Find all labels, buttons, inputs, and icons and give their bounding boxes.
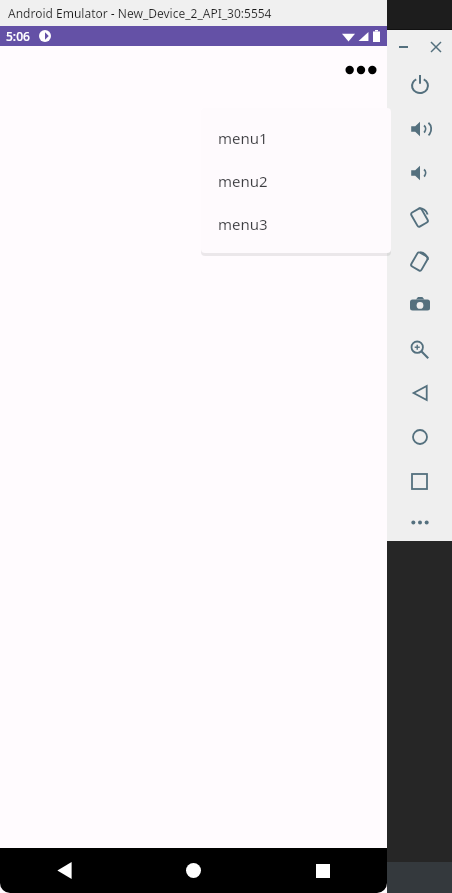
button[interactable]: menu1 [201, 116, 391, 159]
button[interactable]: Volume down [387, 151, 452, 195]
button[interactable]: Minimize [387, 30, 419, 63]
button[interactable]: Recent apps [258, 848, 387, 893]
button[interactable]: Power [387, 63, 452, 107]
staticText: Android Emulator - New_Device_2_API_30:5… [8, 5, 272, 21]
button[interactable]: menu3 [201, 202, 391, 245]
staticText: menu2 [218, 171, 268, 191]
button[interactable]: Rotate left [387, 195, 452, 239]
button[interactable]: Home [129, 848, 258, 893]
button[interactable]: Back [0, 848, 129, 893]
button[interactable]: Zoom [387, 327, 452, 371]
button[interactable]: Take screenshot [387, 283, 452, 327]
button[interactable]: Rotate right [387, 239, 452, 283]
staticText: menu1 [218, 128, 268, 148]
staticText: menu3 [218, 214, 268, 234]
button[interactable]: Overview [387, 459, 452, 503]
button[interactable]: More options [337, 46, 385, 94]
button[interactable]: Home [387, 415, 452, 459]
button[interactable]: Back [387, 371, 452, 415]
staticText: 5:06 [6, 28, 30, 44]
button[interactable]: Volume up [387, 107, 452, 151]
button[interactable]: More [387, 503, 452, 541]
button[interactable]: menu2 [201, 159, 391, 202]
button[interactable]: Close [419, 30, 452, 63]
